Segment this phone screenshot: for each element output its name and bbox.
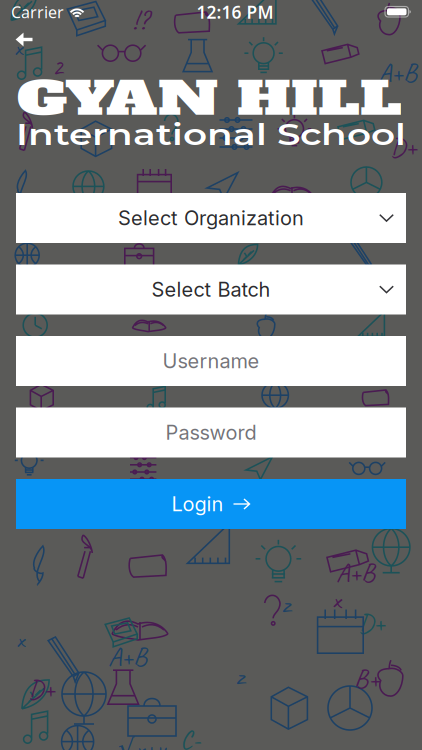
staticText: International School <box>16 116 406 161</box>
staticText: √x+y <box>118 732 165 750</box>
staticText: x <box>14 32 22 62</box>
staticText: x <box>332 584 341 616</box>
staticText: z <box>236 660 244 692</box>
staticText: Login <box>171 492 223 516</box>
staticText: D+ <box>28 672 55 706</box>
button[interactable]: Select Organization <box>16 193 406 243</box>
button[interactable]: Login <box>16 479 406 529</box>
staticText: Password <box>165 420 256 445</box>
staticText: Select Organization <box>118 206 304 230</box>
staticText: D+ <box>358 606 385 640</box>
staticText: B+ <box>354 662 380 696</box>
staticText: GYAN HILL <box>17 67 402 155</box>
button[interactable]: Back <box>6 21 46 59</box>
staticText: 12:16 PM <box>196 0 273 23</box>
staticText: Select Batch <box>151 277 270 302</box>
staticText: x <box>16 624 24 654</box>
button[interactable]: Password <box>16 407 406 457</box>
staticText: A+B <box>336 556 375 590</box>
staticText: z <box>282 588 290 620</box>
staticText: A+B <box>108 640 147 674</box>
staticText: Username <box>162 349 259 373</box>
staticText: !? <box>132 4 148 38</box>
button[interactable]: Select Batch <box>16 264 406 314</box>
staticText: 2 <box>52 52 63 82</box>
staticText: C- <box>180 724 200 750</box>
staticText: A+B <box>378 56 417 90</box>
staticText: D+ <box>390 130 417 164</box>
staticText: Carrier <box>11 1 64 23</box>
button[interactable]: Username <box>16 336 406 386</box>
